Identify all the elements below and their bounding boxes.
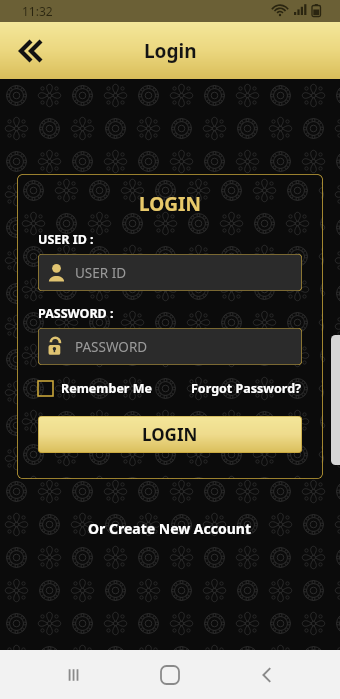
staticText: Or Create New Account [88, 519, 252, 538]
button[interactable]: Back [243, 651, 291, 699]
button[interactable]: Recents [49, 651, 97, 699]
staticText: USER ID [75, 264, 127, 282]
staticText: PASSWORD [75, 338, 148, 356]
staticText: 11:32 [22, 3, 53, 19]
button[interactable]: Remember Me [38, 378, 152, 399]
staticText: LOGIN [38, 191, 302, 217]
button[interactable]: USER ID [38, 254, 302, 291]
staticText: PASSWORD : [38, 305, 114, 322]
button[interactable]: Home [146, 651, 194, 699]
button[interactable]: Forgot Password? [191, 378, 302, 399]
staticText: USER ID : [38, 231, 94, 248]
staticText: Forgot Password? [191, 380, 302, 397]
button[interactable]: PASSWORD [38, 328, 302, 365]
button[interactable]: Or Create New Account [78, 515, 262, 542]
button[interactable]: LOGIN [38, 416, 302, 453]
button[interactable]: Back [8, 29, 52, 73]
staticText: Remember Me [61, 380, 152, 397]
staticText: Login [144, 38, 197, 64]
staticText: LOGIN [142, 423, 198, 446]
